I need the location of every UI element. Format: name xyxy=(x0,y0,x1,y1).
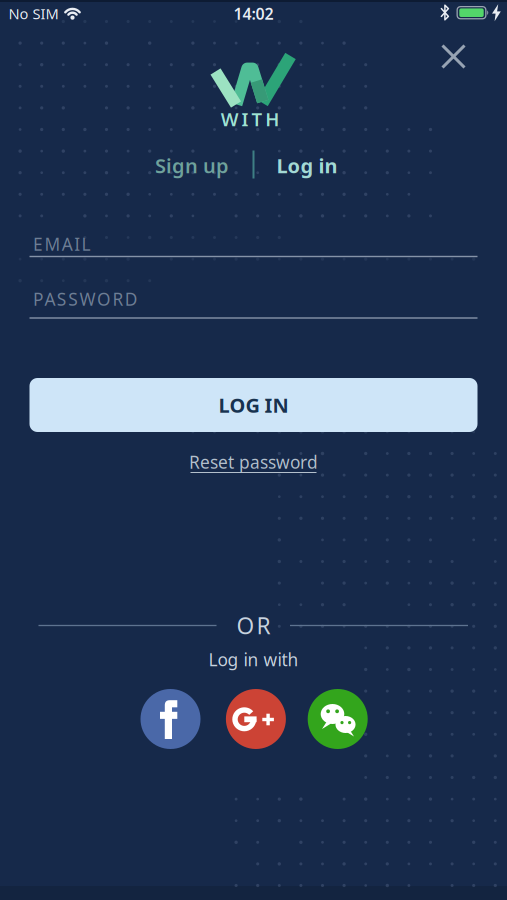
staticText: W xyxy=(80,287,96,310)
staticText: No SIM xyxy=(8,4,58,23)
staticText: W xyxy=(221,107,239,131)
staticText: S xyxy=(57,287,67,310)
staticText: D xyxy=(125,287,138,310)
button[interactable]: Log in xyxy=(0,0,507,900)
button[interactable]: LOG IN xyxy=(0,0,507,900)
staticText: O xyxy=(236,610,254,640)
staticText: I xyxy=(74,232,80,255)
button[interactable]: Close xyxy=(0,0,507,900)
button[interactable]: Reset password xyxy=(0,0,507,900)
staticText: P xyxy=(33,287,43,310)
staticText: Log in xyxy=(276,152,337,179)
staticText: S xyxy=(68,287,78,310)
staticText: M xyxy=(44,232,60,255)
staticText: Log in with xyxy=(208,648,298,671)
staticText: R xyxy=(257,610,271,640)
staticText: A xyxy=(44,287,55,310)
staticText: 14:02 xyxy=(233,3,273,24)
staticText: E xyxy=(33,232,43,255)
button[interactable]: Sign up xyxy=(0,0,507,900)
staticText: I xyxy=(242,107,249,131)
staticText: O xyxy=(97,287,111,310)
button[interactable]: Log in with Google xyxy=(0,0,507,900)
staticText: L xyxy=(82,232,91,255)
button[interactable]: Log in with WeChat xyxy=(0,0,507,900)
staticText: T xyxy=(251,107,262,131)
button[interactable]: Log in with Facebook xyxy=(0,0,507,900)
staticText: Sign up xyxy=(155,152,229,179)
staticText: Reset password xyxy=(189,450,318,473)
staticText: H xyxy=(265,107,279,131)
staticText: A xyxy=(62,232,73,255)
staticText: LOG IN xyxy=(218,392,288,418)
staticText: R xyxy=(112,287,123,310)
